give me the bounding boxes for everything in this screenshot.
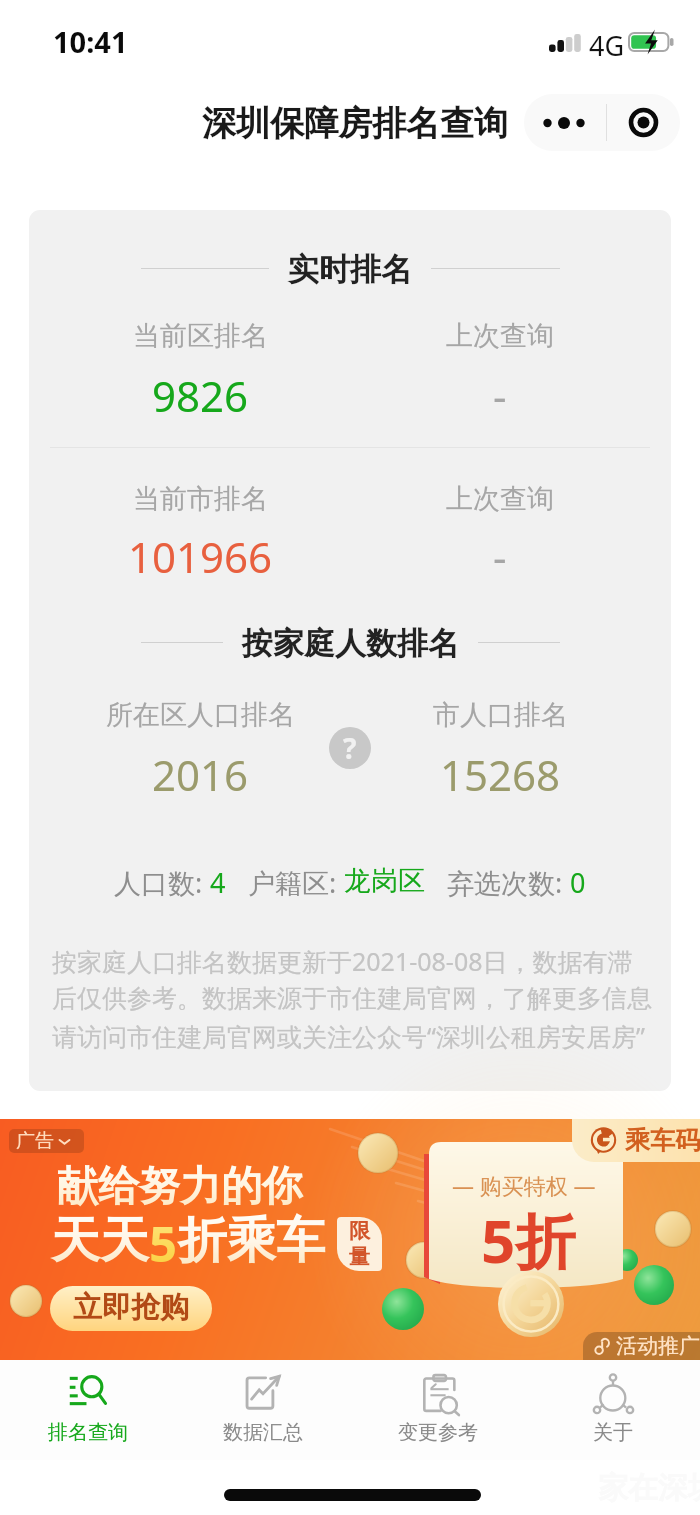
staticText: 折乘车 (178, 1210, 325, 1272)
staticText: 天天 (51, 1210, 149, 1272)
staticText: 献给努力的你 (57, 1161, 303, 1213)
staticText: 数据汇总 (223, 1420, 303, 1445)
staticText: 4 (210, 864, 226, 901)
staticText: 所在区人口排名 (106, 698, 295, 732)
button[interactable]: Help (329, 727, 371, 769)
staticText: 市人口排名 (433, 698, 568, 732)
staticText: — 购买特权 — (452, 1170, 596, 1200)
staticText: 5折 (481, 1199, 576, 1281)
staticText: 排名查询 (48, 1420, 128, 1445)
button[interactable]: 关于 (525, 1360, 700, 1460)
staticText: 当前区排名 (133, 319, 268, 353)
button[interactable]: 变更参考 (350, 1360, 525, 1460)
button[interactable]: More options (524, 94, 680, 151)
staticText: 10:41 (53, 22, 128, 61)
staticText: 上次查询 (446, 319, 554, 353)
staticText: 0 (570, 864, 586, 901)
staticText: - (493, 528, 507, 585)
staticText: - (493, 367, 507, 424)
staticText: 户籍区: (248, 864, 344, 901)
staticText: 当前市排名 (133, 482, 268, 516)
staticText: 15268 (440, 746, 561, 803)
staticText: 广告 (16, 1129, 54, 1153)
staticText: 2016 (152, 746, 249, 803)
staticText: 4G (589, 27, 625, 64)
staticText: 活动推广 (616, 1333, 700, 1359)
staticText: 人口数: (114, 864, 210, 901)
staticText: 乘车码 (625, 1125, 700, 1156)
button[interactable]: 数据汇总 (175, 1360, 350, 1460)
staticText: 弃选次数: (447, 864, 570, 901)
button[interactable]: Close mini program (607, 94, 680, 151)
staticText: 上次查询 (446, 482, 554, 516)
staticText: 按家庭人口排名数据更新于2021-08-08日，数据有滞后仅供参考。数据来源于市… (52, 944, 654, 1053)
staticText: 立即抢购 (73, 1289, 189, 1326)
button[interactable]: 立即抢购 (50, 1286, 212, 1331)
staticText: 关于 (593, 1420, 633, 1445)
staticText: 龙岗区 (344, 864, 425, 898)
staticText: 5 (149, 1210, 178, 1277)
button[interactable]: 广告 (0, 1119, 700, 1360)
staticText: 9826 (152, 367, 249, 424)
staticText: ? (343, 729, 357, 767)
staticText: 量 (349, 1244, 370, 1270)
staticText: 深圳保障房排名查询 (202, 102, 508, 145)
button[interactable]: More options (524, 94, 606, 151)
staticText: 按家庭人数排名 (242, 624, 459, 663)
staticText: 变更参考 (398, 1420, 478, 1445)
button[interactable]: 排名查询 (0, 1360, 175, 1460)
staticText: 限 (349, 1218, 370, 1244)
staticText: 101966 (128, 528, 273, 585)
staticText: 实时排名 (288, 250, 412, 289)
